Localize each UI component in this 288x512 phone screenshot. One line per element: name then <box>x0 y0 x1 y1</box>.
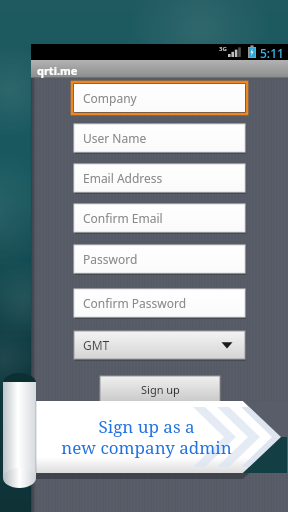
staticText: Confirm Password <box>83 295 187 311</box>
staticText: Confirm Email <box>83 210 163 226</box>
staticText: 3G <box>219 45 227 53</box>
button[interactable]: User Name <box>74 124 245 152</box>
button[interactable]: Password <box>74 245 245 273</box>
button[interactable]: qrti.me <box>37 63 78 78</box>
staticText: GMT <box>83 337 110 353</box>
staticText: Email Address <box>83 170 163 186</box>
button[interactable]: Company <box>74 84 245 112</box>
button[interactable]: Sign up as a new company admin <box>46 406 246 468</box>
staticText: Company <box>83 90 137 106</box>
staticText: User Name <box>83 130 147 146</box>
staticText: 5:11 <box>260 45 284 61</box>
button[interactable]: Confirm Email <box>74 204 245 232</box>
staticText: Password <box>83 251 138 267</box>
staticText: Sign up as a new company admin <box>61 415 232 459</box>
button[interactable]: Time zone <box>74 331 245 359</box>
button[interactable]: Confirm Password <box>74 289 245 317</box>
button[interactable]: Sign up <box>100 376 220 402</box>
staticText: Sign up <box>141 382 180 397</box>
button[interactable]: Email Address <box>74 164 245 192</box>
